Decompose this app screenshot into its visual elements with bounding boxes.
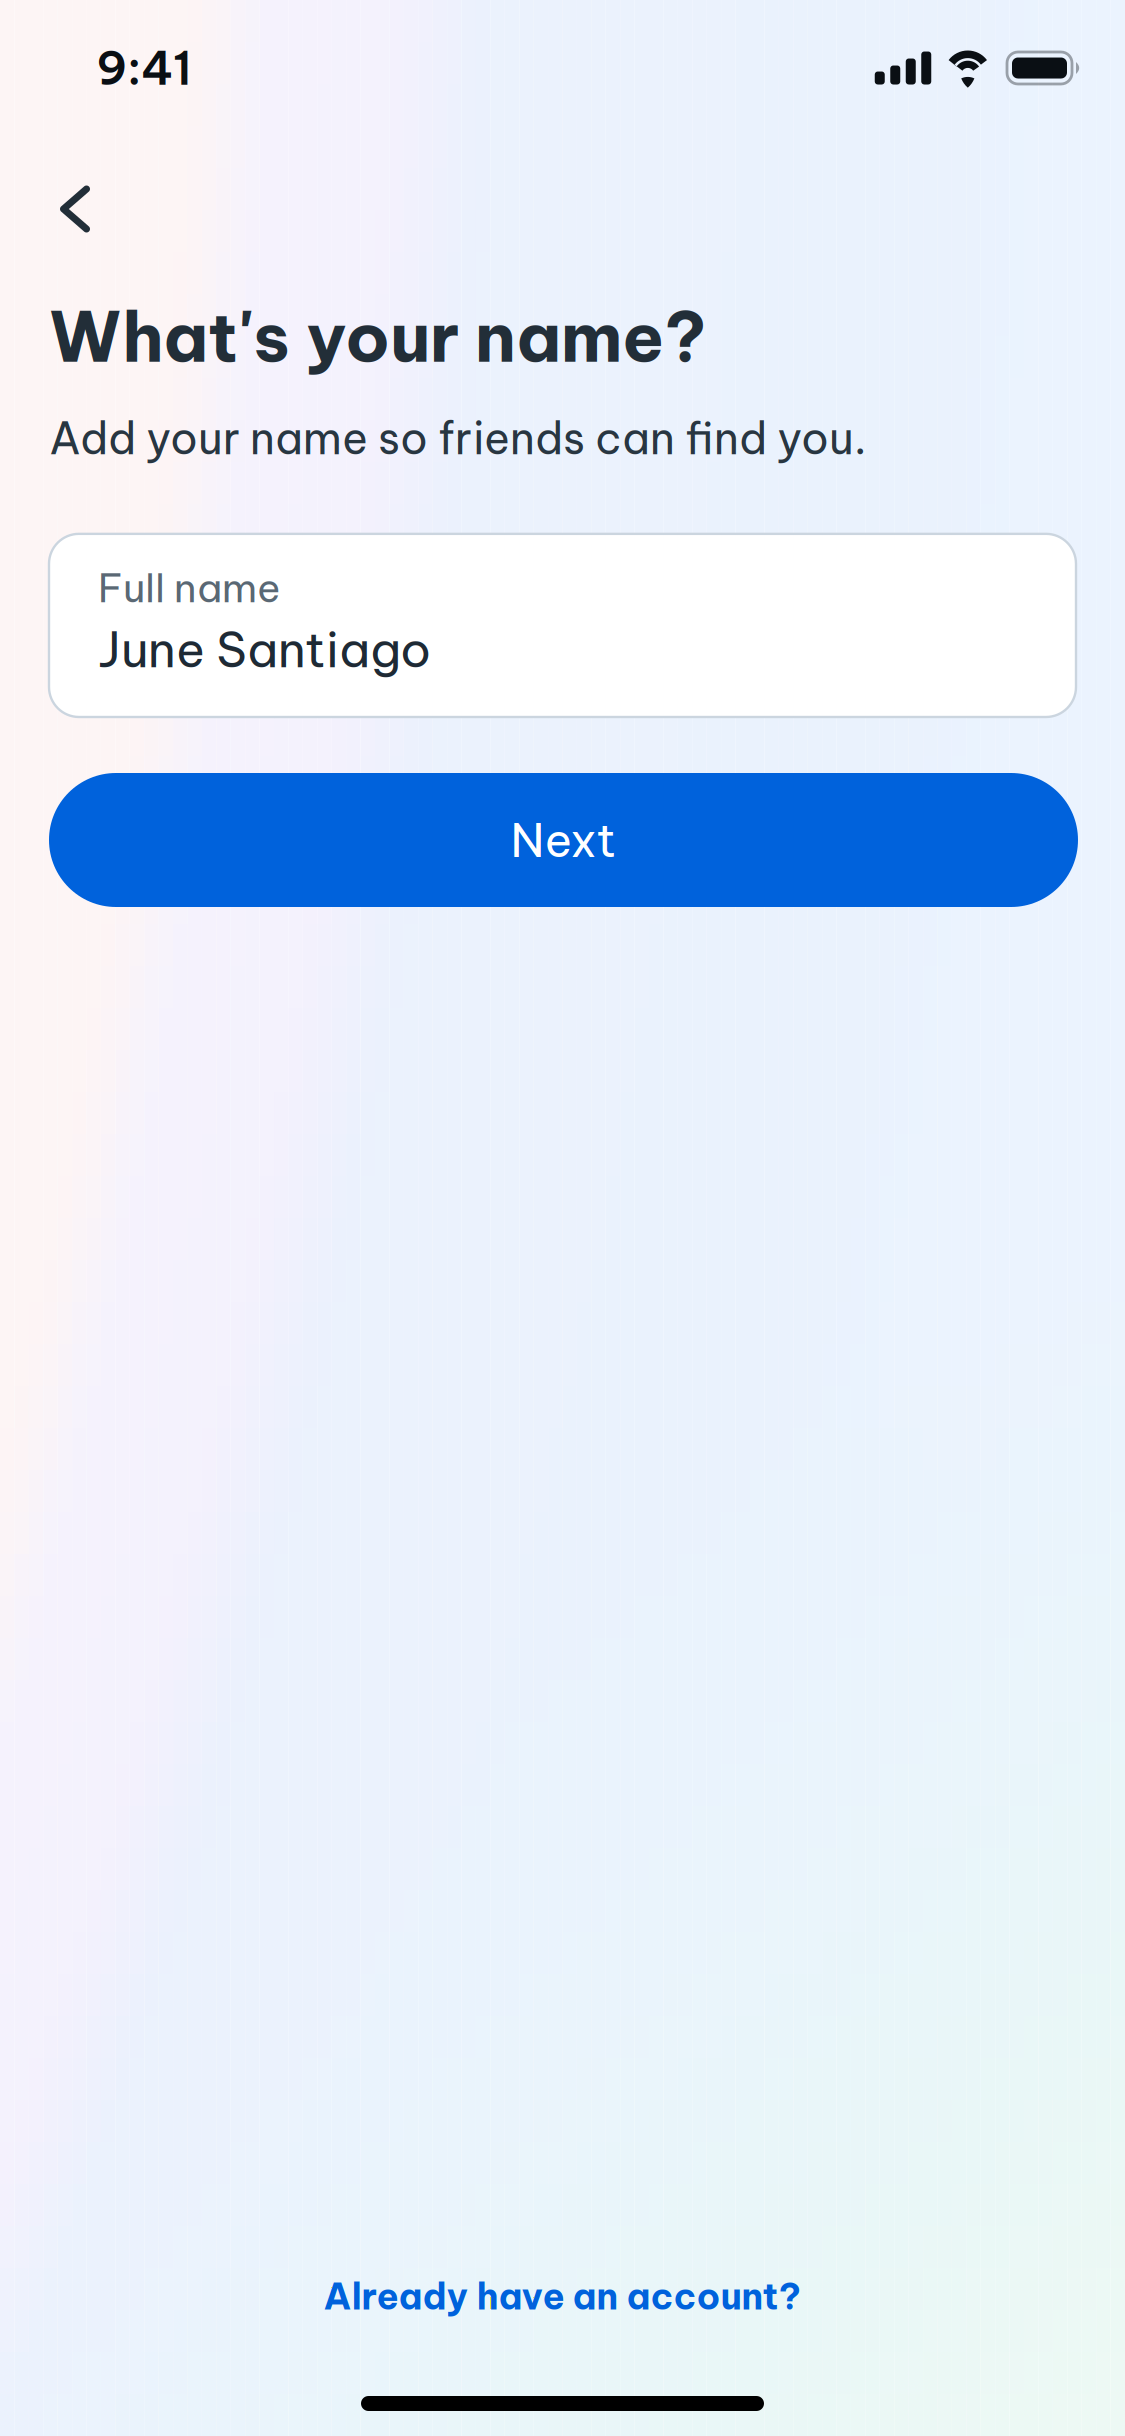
- staticText: Full name: [98, 563, 281, 613]
- staticText: Add your name so friends can find you.: [49, 411, 866, 466]
- staticText: 9:41: [96, 39, 192, 97]
- button[interactable]: Next: [49, 773, 1078, 907]
- staticText: What's your name?: [49, 293, 707, 380]
- button[interactable]: Already have an account?: [0, 2251, 1125, 2341]
- staticText: Next: [510, 811, 616, 869]
- staticText: Already have an account?: [323, 2273, 801, 2319]
- button[interactable]: Back: [20, 154, 130, 264]
- staticText: June Santiago: [98, 619, 431, 680]
